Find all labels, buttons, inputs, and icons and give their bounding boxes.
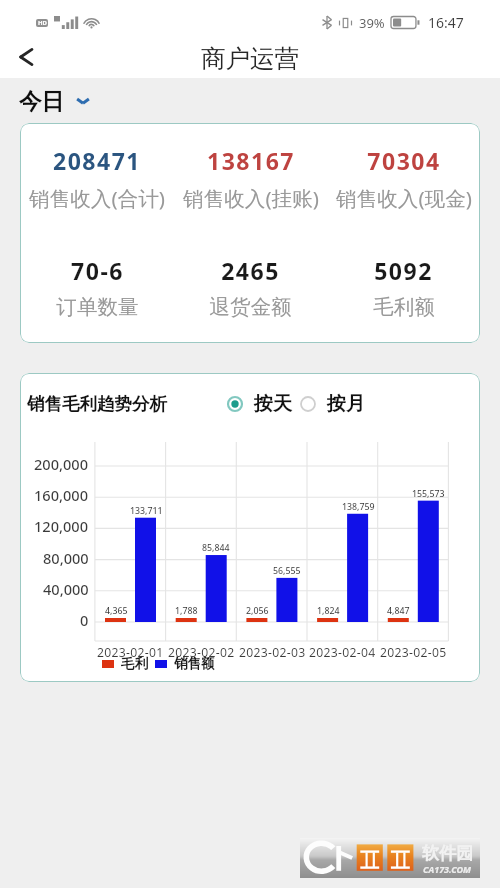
staticText: 2465	[221, 255, 280, 286]
staticText: 138167	[207, 145, 295, 176]
staticText: 销售额	[174, 655, 215, 672]
staticText: 208471	[53, 145, 141, 176]
staticText: 133,711	[130, 505, 163, 517]
button[interactable]: 70-6	[20, 255, 174, 320]
button[interactable]: Back	[0, 40, 48, 74]
staticText: 2023-02-02	[168, 644, 235, 661]
button[interactable]: 208471	[20, 145, 174, 212]
staticText: 138,759	[342, 501, 375, 513]
staticText: 销售收入(现金)	[336, 184, 472, 212]
staticText: 80,000	[43, 548, 89, 568]
staticText: 销售收入(合计)	[29, 184, 165, 212]
staticText: 4,847	[387, 605, 410, 617]
staticText: 按月	[327, 392, 365, 416]
staticText: 2023-02-01	[97, 644, 164, 661]
staticText: 毛利额	[373, 294, 435, 320]
staticText: 39%	[359, 14, 385, 32]
button[interactable]: 5092	[327, 255, 480, 320]
staticText: 155,573	[412, 488, 445, 500]
button[interactable]: 70304	[327, 145, 480, 212]
staticText: 退货金额	[209, 294, 292, 320]
staticText: 4,365	[105, 605, 128, 617]
button[interactable]: 按月	[300, 392, 365, 416]
staticText: 销售收入(挂账)	[183, 184, 319, 212]
button[interactable]: 138167	[174, 145, 327, 212]
staticText: 5092	[374, 255, 433, 286]
staticText: 毛利	[121, 655, 148, 672]
staticText: 1,824	[317, 605, 340, 617]
staticText: 今日	[19, 87, 64, 115]
staticText: 40,000	[43, 579, 89, 599]
staticText: 160,000	[34, 485, 89, 505]
button[interactable]: 按天	[227, 392, 292, 416]
staticText: 1,788	[175, 605, 198, 617]
staticText: HD	[38, 19, 47, 27]
staticText: 56,555	[273, 565, 301, 577]
staticText: 0	[80, 610, 89, 630]
staticText: 2023-02-04	[309, 644, 376, 661]
staticText: 商户运营	[201, 43, 299, 74]
staticText: 16:47	[428, 13, 464, 32]
staticText: 按天	[254, 392, 292, 416]
button[interactable]: 今日	[0, 78, 500, 123]
staticText: 2023-02-05	[380, 644, 447, 661]
staticText: 70-6	[71, 255, 124, 286]
staticText: 85,844	[202, 542, 230, 554]
button[interactable]: 2465	[174, 255, 327, 320]
staticText: 软件园	[422, 843, 473, 864]
staticText: 120,000	[34, 516, 89, 536]
staticText: 200,000	[34, 454, 89, 474]
staticText: 订单数量	[56, 294, 139, 320]
staticText: 销售毛利趋势分析	[27, 393, 167, 415]
staticText: CA173.COM	[423, 863, 472, 875]
staticText: 70304	[367, 145, 441, 176]
staticText: 2,056	[246, 605, 269, 617]
staticText: 2023-02-03	[239, 644, 306, 661]
